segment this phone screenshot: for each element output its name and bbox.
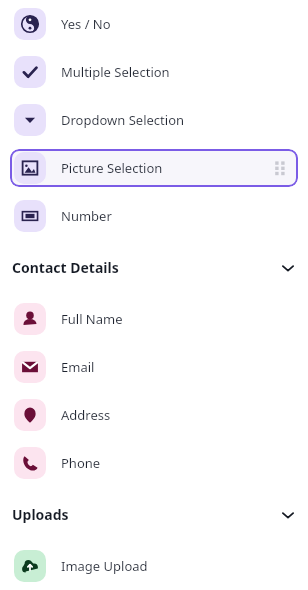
staticText: Yes / No <box>61 15 111 33</box>
button[interactable]: Dropdown Selection <box>0 96 308 144</box>
button[interactable]: Yes / No <box>0 0 308 48</box>
button[interactable]: Image Upload <box>0 542 308 590</box>
staticText: Phone <box>61 454 101 472</box>
staticText: Email <box>61 358 95 376</box>
staticText: Uploads <box>12 505 69 524</box>
staticText: Contact Details <box>12 258 119 277</box>
button[interactable]: Phone <box>0 439 308 487</box>
other: Drag handle <box>274 161 288 175</box>
button[interactable]: Multiple Selection <box>0 48 308 96</box>
staticText: Image Upload <box>61 557 148 575</box>
button[interactable]: Address <box>0 391 308 439</box>
button[interactable]: Uploads <box>0 487 308 542</box>
staticText: Multiple Selection <box>61 63 170 81</box>
staticText: Dropdown Selection <box>61 111 185 129</box>
button[interactable]: Contact Details <box>0 240 308 295</box>
staticText: Address <box>61 406 111 424</box>
staticText: Number <box>61 207 112 225</box>
staticText: Full Name <box>61 310 123 328</box>
button[interactable]: Number <box>0 192 308 240</box>
other: Collapse <box>280 507 296 523</box>
button[interactable]: Email <box>0 343 308 391</box>
other: Collapse <box>280 260 296 276</box>
staticText: Picture Selection <box>61 159 163 177</box>
button[interactable]: Full Name <box>0 295 308 343</box>
button[interactable]: Picture Selection <box>10 149 298 187</box>
